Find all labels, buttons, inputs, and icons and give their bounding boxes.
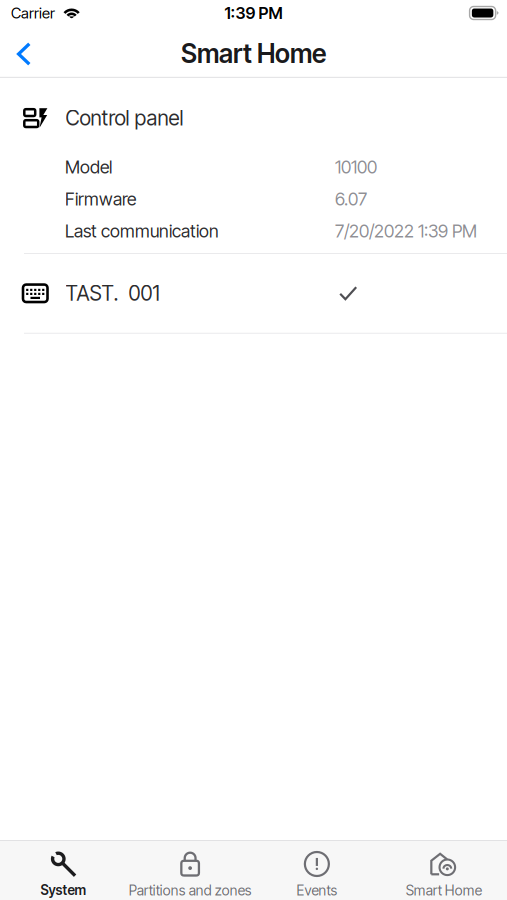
staticText: Carrier [11,4,55,22]
button[interactable]: Smart Home [380,840,507,900]
button[interactable]: System [0,840,127,900]
button[interactable]: Back [1,30,47,78]
staticText: Firmware [65,188,136,210]
staticText: 1:39 PM [224,3,282,23]
staticText: Control panel [65,105,183,130]
staticText: 7/20/2022 1:39 PM [335,220,477,242]
button[interactable]: TAST. 001 [0,254,507,333]
staticText: Events [296,882,337,899]
staticText: Smart Home [406,882,482,899]
staticText: 6.07 [335,188,367,210]
staticText: TAST. 001 [65,281,159,306]
staticText: Model [65,156,112,178]
staticText: System [40,882,86,898]
staticText: 10100 [335,156,377,178]
staticText: Last communication [65,220,219,242]
staticText: Partitions and zones [129,882,252,899]
staticText: Smart Home [181,38,326,69]
button[interactable]: Partitions and zones [127,840,254,900]
button[interactable]: Events [253,840,380,900]
